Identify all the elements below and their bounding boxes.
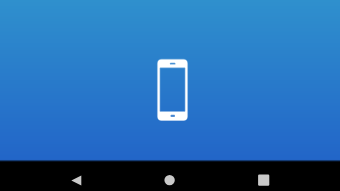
button[interactable]: Back <box>53 160 99 191</box>
button[interactable]: Home <box>147 160 193 191</box>
button[interactable]: Recent apps <box>241 160 287 191</box>
